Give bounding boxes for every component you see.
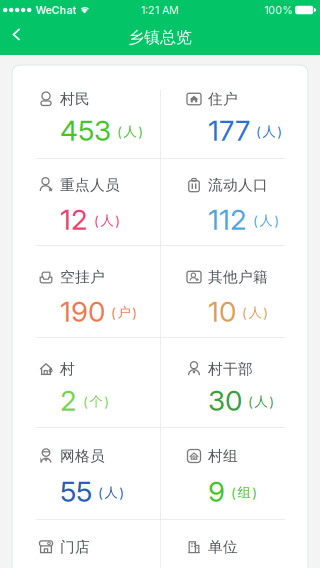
staticText: 55 (60, 475, 92, 508)
staticText: (人) (256, 123, 282, 140)
staticText: 村干部 (208, 360, 253, 378)
button[interactable]: 空挂户 (12, 246, 160, 337)
button[interactable]: 重点人员 (12, 159, 160, 245)
staticText: 453 (60, 114, 111, 147)
staticText: 村组 (208, 447, 238, 465)
staticText: (人) (94, 212, 120, 229)
button[interactable]: 网格员 (12, 428, 160, 519)
staticText: 住户 (208, 90, 238, 108)
staticText: 1:21 AM (141, 4, 179, 16)
staticText: 网格员 (60, 447, 105, 465)
staticText: 177 (208, 114, 250, 147)
staticText: 112 (208, 203, 247, 236)
button[interactable]: 村组 (160, 428, 308, 519)
staticText: 其他户籍 (208, 268, 268, 286)
button[interactable]: 单位 (160, 520, 308, 568)
staticText: 门店 (60, 538, 90, 556)
staticText: (组) (231, 484, 257, 501)
staticText: 10 (208, 295, 236, 328)
staticText: (人) (242, 304, 268, 321)
staticText: (人) (117, 123, 143, 140)
staticText: 190 (60, 295, 105, 328)
button[interactable]: 村干部 (160, 338, 308, 427)
staticText: 100% (264, 4, 292, 16)
staticText: 30 (208, 384, 242, 417)
staticText: (户) (111, 304, 137, 321)
staticText: (人) (253, 212, 279, 229)
staticText: 单位 (208, 538, 238, 556)
staticText: 2 (60, 384, 77, 417)
staticText: 流动人口 (208, 176, 268, 194)
button[interactable]: 村 (12, 338, 160, 427)
button[interactable]: 住户 (160, 65, 308, 158)
button[interactable]: 门店 (12, 520, 160, 568)
staticText: 村 (60, 360, 75, 378)
staticText: 重点人员 (60, 176, 120, 194)
staticText: 村民 (60, 90, 90, 108)
staticText: (个) (83, 393, 109, 410)
button[interactable]: 流动人口 (160, 159, 308, 245)
staticText: 12 (60, 203, 88, 236)
staticText: (人) (248, 393, 274, 410)
button[interactable]: 其他户籍 (160, 246, 308, 337)
button[interactable]: Back (0, 23, 23, 52)
staticText: 空挂户 (60, 268, 105, 286)
staticText: 乡镇总览 (128, 28, 192, 47)
staticText: (人) (98, 484, 124, 501)
button[interactable]: 村民 (12, 65, 160, 158)
staticText: 9 (208, 475, 225, 508)
staticText: WeChat (35, 4, 76, 16)
